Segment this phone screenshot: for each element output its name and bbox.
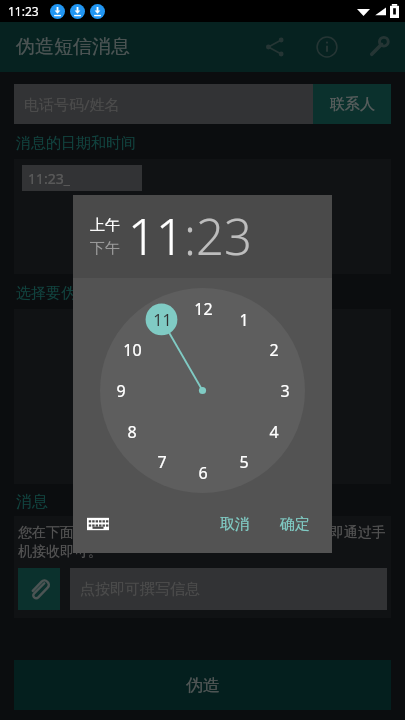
staticText: 8 xyxy=(127,421,137,443)
staticText: 23 xyxy=(196,203,252,270)
button[interactable]: 电话号码/姓名 xyxy=(14,84,313,124)
button[interactable]: 11:23_ xyxy=(22,165,142,191)
button[interactable]: 伪造 xyxy=(14,660,391,710)
staticText: 消息 xyxy=(16,492,48,512)
staticText: 选择要伪造的短信类型 xyxy=(16,284,166,303)
button[interactable]: Share xyxy=(259,31,291,63)
staticText: 您在下面输入的信息不会发送给任何人。 您只需立即通过手机接收即可。 xyxy=(18,522,387,560)
staticText: 电话号码/姓名 xyxy=(24,94,120,114)
button[interactable]: 8 xyxy=(115,415,149,449)
staticText: 10 xyxy=(123,339,142,361)
staticText: 4 xyxy=(269,421,279,443)
staticText: 确定 xyxy=(280,515,310,534)
button[interactable]: 点按即可撰写信息 xyxy=(70,568,387,610)
button[interactable]: 6 xyxy=(186,456,220,490)
button[interactable]: 4 xyxy=(257,415,291,449)
button[interactable]: 确定 xyxy=(268,509,322,540)
staticText: 11 xyxy=(153,309,172,331)
staticText: 7 xyxy=(157,451,167,473)
staticText: 联系人 xyxy=(330,95,375,114)
staticText: 12 xyxy=(194,298,213,320)
button[interactable]: 1 xyxy=(227,303,261,337)
button[interactable]: 7 xyxy=(145,445,179,479)
button[interactable]: 11 xyxy=(128,203,184,270)
button[interactable]: 9 xyxy=(104,374,138,408)
staticText: 6 xyxy=(198,462,208,484)
button[interactable]: 下午 xyxy=(90,239,120,258)
staticText: 取消 xyxy=(220,515,250,534)
staticText: 1 xyxy=(239,309,249,331)
button[interactable]: Attach xyxy=(18,568,60,610)
staticText: 3 xyxy=(280,380,290,402)
button[interactable]: 3 xyxy=(268,374,302,408)
staticText: 11:23_ xyxy=(28,169,70,188)
staticText: 11 xyxy=(128,203,184,270)
staticText: 点按即可撰写信息 xyxy=(80,580,200,599)
staticText: 2 xyxy=(269,339,279,361)
staticText: 5 xyxy=(239,451,249,473)
button[interactable]: Info xyxy=(311,31,343,63)
button[interactable]: 10 xyxy=(115,333,149,367)
button[interactable]: 取消 xyxy=(208,509,262,540)
staticText: 11:23 xyxy=(8,3,39,19)
staticText: 伪造短信消息 xyxy=(16,35,130,59)
button[interactable]: 11 xyxy=(145,303,179,337)
staticText: 上午 xyxy=(90,216,120,235)
staticText: 消息的日期和时间 xyxy=(16,134,136,153)
button[interactable]: 5 xyxy=(227,445,261,479)
staticText: 下午 xyxy=(90,239,120,258)
button[interactable]: Keyboard input xyxy=(83,509,113,539)
button[interactable]: 12 xyxy=(186,292,220,326)
staticText: 伪造 xyxy=(186,675,220,696)
button[interactable]: Settings xyxy=(363,31,395,63)
staticText: 9 xyxy=(116,380,126,402)
button[interactable]: 联系人 xyxy=(313,84,391,124)
button[interactable]: 2 xyxy=(257,333,291,367)
staticText: : xyxy=(184,203,196,270)
button[interactable]: 上午 xyxy=(90,216,120,235)
button[interactable]: 23 xyxy=(196,203,252,270)
